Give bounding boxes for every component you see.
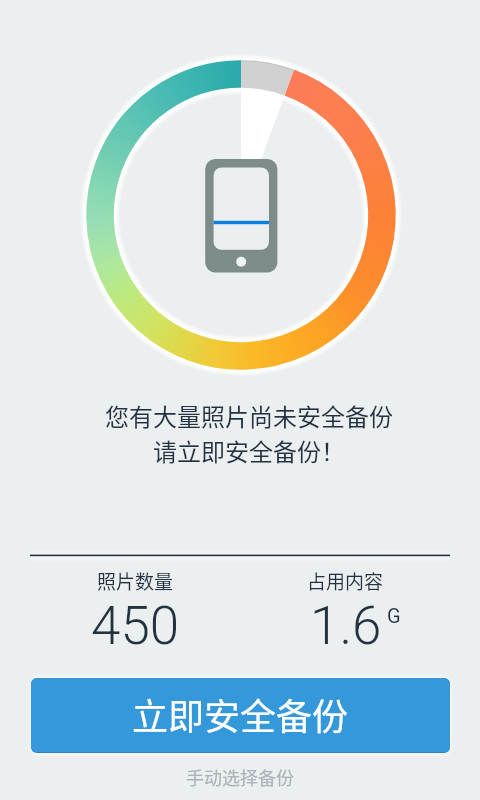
other: 备份进度环形图 — [0, 0, 480, 800]
staticText: 1.6 — [310, 595, 382, 657]
button[interactable]: 立即安全备份 — [31, 678, 450, 752]
staticText: 手动选择备份 — [186, 764, 294, 790]
staticText: 照片数量 — [97, 567, 174, 595]
staticText: 占用内容 — [307, 567, 384, 595]
staticText: 立即安全备份 — [132, 688, 349, 740]
staticText: 450 — [91, 595, 180, 657]
staticText: 您有大量照片尚未安全备份 请立即安全备份！ — [105, 398, 393, 468]
staticText: G — [387, 604, 401, 627]
button[interactable]: 手动选择备份 — [172, 761, 308, 793]
